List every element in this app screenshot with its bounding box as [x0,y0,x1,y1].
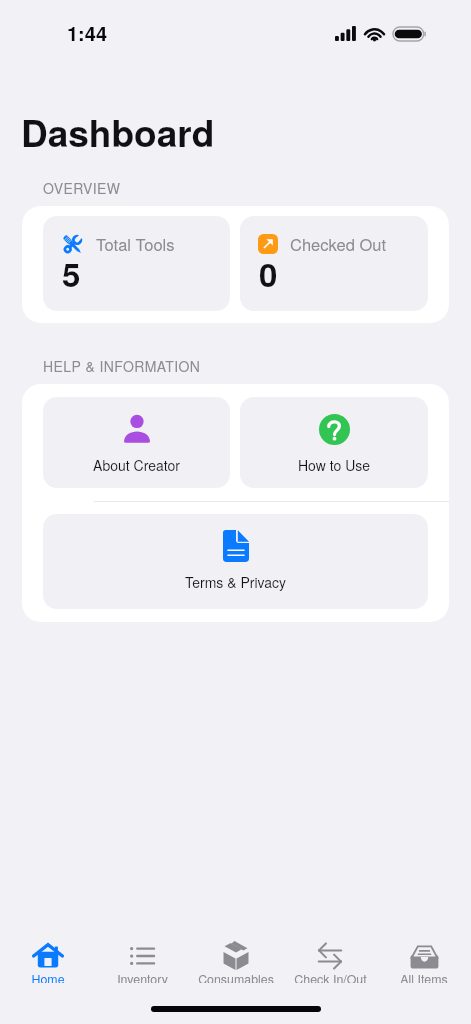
staticText: Checked Out [290,232,387,256]
other: Check In/Out [318,942,342,970]
button[interactable]: Terms & Privacy [43,514,428,609]
button[interactable]: How to Use [240,397,428,488]
staticText: 0 [259,250,278,297]
staticText: Inventory [117,970,168,983]
staticText: OVERVIEW [43,178,121,198]
staticText: All Items [400,970,448,983]
staticText: Check In/Out [294,970,367,983]
staticText: HELP & INFORMATION [43,356,201,376]
staticText: 1:44 [67,18,108,47]
staticText: Terms & Privacy [185,572,287,592]
staticText: About Creator [93,455,180,475]
button[interactable]: Home [0,937,95,983]
button[interactable]: All Items [377,937,471,983]
button[interactable]: About Creator [43,397,230,488]
button[interactable]: Consumables [189,937,283,983]
other: Home [33,943,63,969]
other: Consumables [223,943,249,970]
button[interactable]: Total Tools [43,216,230,311]
staticText: Total Tools [96,232,175,256]
other: Inventory [130,947,155,965]
staticText: Dashboard [21,105,215,158]
button[interactable]: Inventory [95,937,189,983]
staticText: 5 [62,250,81,297]
button[interactable]: Checked Out [240,216,428,311]
other: All Items [410,945,439,967]
staticText: Home [31,970,65,983]
staticText: How to Use [298,455,371,475]
button[interactable]: Check In/Out [283,937,377,983]
staticText: Consumables [198,970,274,983]
